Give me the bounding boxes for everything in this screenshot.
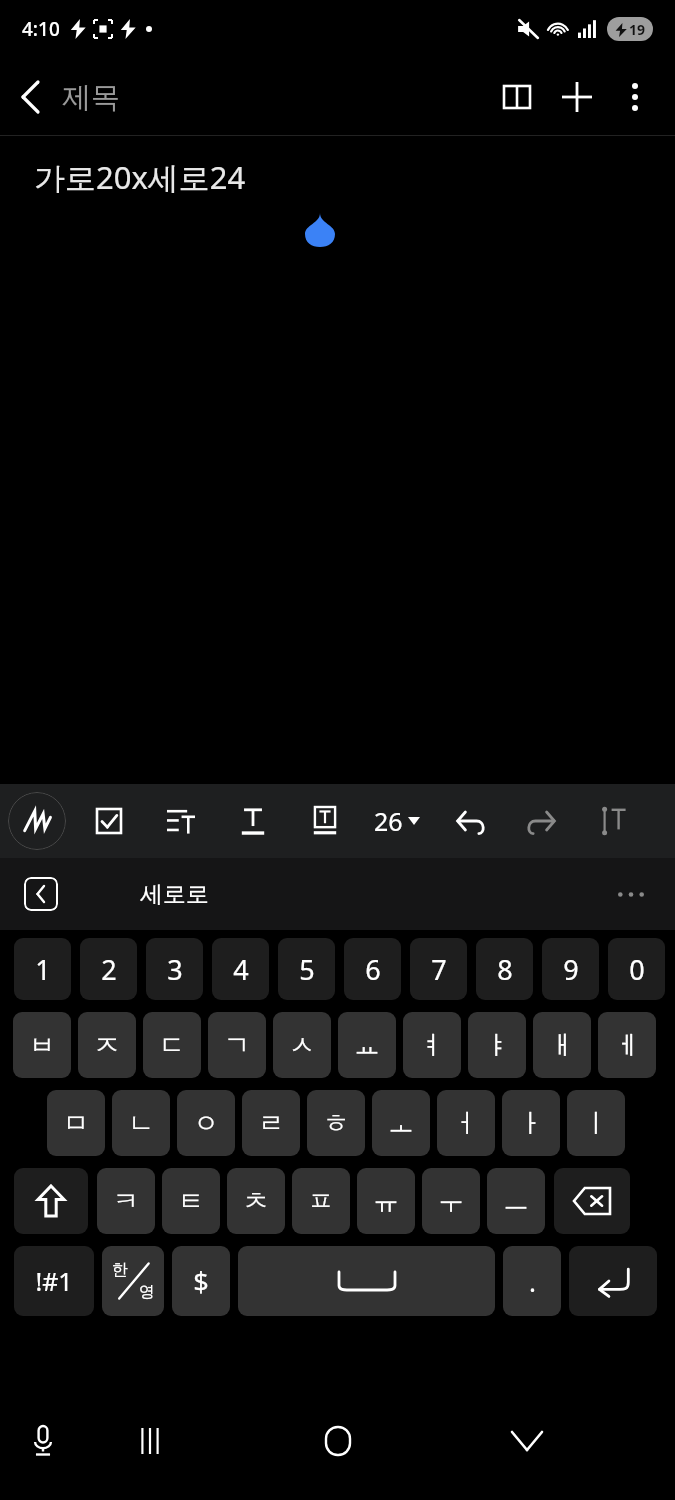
button[interactable]: 3 [146, 938, 203, 1000]
button[interactable]: ㅕ [403, 1012, 461, 1078]
button[interactable]: 6 [344, 938, 401, 1000]
staticText: 1 [35, 951, 51, 988]
button[interactable]: Shift [14, 1168, 88, 1234]
button[interactable]: ㅋ [97, 1168, 155, 1234]
button[interactable]: ㅣ [567, 1090, 625, 1156]
staticText: ㅏ [518, 1107, 544, 1140]
button[interactable]: 1 [14, 938, 71, 1000]
staticText: 0 [629, 951, 645, 988]
button[interactable]: More [611, 874, 651, 914]
staticText: ㄱ [224, 1029, 250, 1062]
button[interactable]: Handwriting [8, 792, 66, 850]
staticText: ㅋ [113, 1185, 139, 1218]
button[interactable]: Line spacing [588, 796, 638, 846]
button[interactable]: 4 [212, 938, 269, 1000]
staticText: ㅣ [583, 1107, 609, 1140]
button[interactable]: Paragraph style [156, 796, 206, 846]
button[interactable]: Hide keyboard [499, 1413, 555, 1469]
button[interactable]: ㅜ [422, 1168, 480, 1234]
button[interactable]: ㄷ [143, 1012, 201, 1078]
staticText: ㅛ [354, 1029, 380, 1062]
button[interactable]: 5 [278, 938, 335, 1000]
button[interactable]: Text style [228, 796, 278, 846]
staticText: ㅎ [323, 1107, 349, 1140]
button[interactable]: 0 [608, 938, 665, 1000]
button[interactable]: Recents [122, 1413, 178, 1469]
staticText: 세로로 [140, 880, 209, 909]
button[interactable]: Previous suggestions [24, 877, 58, 911]
button[interactable]: Redo [516, 796, 566, 846]
button[interactable]: ㅡ [487, 1168, 545, 1234]
button[interactable]: Space [238, 1246, 495, 1316]
button[interactable]: ㅎ [307, 1090, 365, 1156]
button[interactable]: ㅊ [227, 1168, 285, 1234]
button[interactable]: 7 [410, 938, 467, 1000]
staticText: 19 [629, 20, 646, 39]
button[interactable]: ㅠ [357, 1168, 415, 1234]
staticText: ㄷ [159, 1029, 185, 1062]
button[interactable]: Language [102, 1246, 164, 1316]
staticText: ㅂ [29, 1029, 55, 1062]
button[interactable]: ㅂ [13, 1012, 71, 1078]
button[interactable]: Undo [446, 796, 496, 846]
staticText: ㅈ [94, 1029, 120, 1062]
staticText: 4:10 [22, 16, 60, 42]
staticText: ㅕ [419, 1029, 445, 1062]
button[interactable]: ㅗ [372, 1090, 430, 1156]
button[interactable]: ㅏ [502, 1090, 560, 1156]
button[interactable]: Add [547, 67, 607, 127]
button[interactable]: Reading mode [487, 67, 547, 127]
staticText: 26 [374, 804, 403, 838]
button[interactable]: 9 [542, 938, 599, 1000]
button[interactable]: 26 [370, 804, 424, 838]
staticText: 제목 [62, 79, 120, 116]
staticText: 2 [101, 951, 117, 988]
button[interactable]: ㅁ [47, 1090, 105, 1156]
staticText: !#1 [35, 1264, 73, 1298]
staticText: 가로20x세로24 [34, 156, 246, 198]
button[interactable]: $ [172, 1246, 230, 1316]
button[interactable]: ㅓ [437, 1090, 495, 1156]
button[interactable]: 2 [80, 938, 137, 1000]
button[interactable]: Enter [569, 1246, 657, 1316]
staticText: 8 [497, 951, 513, 988]
staticText: ㅠ [373, 1185, 399, 1218]
button[interactable]: ㅔ [598, 1012, 656, 1078]
button[interactable]: Home [308, 1411, 368, 1471]
button[interactable]: More options [607, 69, 663, 125]
button[interactable]: ㅑ [468, 1012, 526, 1078]
button[interactable]: ㅇ [177, 1090, 235, 1156]
button[interactable]: ㅈ [78, 1012, 136, 1078]
staticText: 6 [365, 951, 381, 988]
staticText: ㅍ [308, 1185, 334, 1218]
staticText: ㄴ [128, 1107, 154, 1140]
button[interactable]: Text box [300, 796, 350, 846]
button[interactable]: ㅐ [533, 1012, 591, 1078]
staticText: ㅓ [453, 1107, 479, 1140]
staticText: $ [193, 1263, 209, 1300]
staticText: 7 [431, 951, 447, 988]
button[interactable]: ㅍ [292, 1168, 350, 1234]
button[interactable]: . [503, 1246, 561, 1316]
button[interactable]: ㄴ [112, 1090, 170, 1156]
button[interactable]: ㅛ [338, 1012, 396, 1078]
button[interactable]: Back [0, 66, 62, 128]
button[interactable]: !#1 [14, 1246, 94, 1316]
staticText: 한 [112, 1260, 128, 1280]
button[interactable]: ㅌ [162, 1168, 220, 1234]
staticText: ㅐ [549, 1029, 575, 1062]
button[interactable]: Backspace [554, 1168, 630, 1234]
button[interactable]: Checklist [84, 796, 134, 846]
button[interactable]: 세로로 [132, 872, 217, 917]
staticText: ㅅ [289, 1029, 315, 1062]
staticText: 4 [233, 951, 249, 988]
staticText: ㅊ [243, 1185, 269, 1218]
staticText: ㅜ [438, 1185, 464, 1218]
button[interactable]: ㄹ [242, 1090, 300, 1156]
button[interactable]: 8 [476, 938, 533, 1000]
button[interactable]: ㅅ [273, 1012, 331, 1078]
staticText: 9 [563, 951, 579, 988]
button[interactable]: ㄱ [208, 1012, 266, 1078]
button[interactable]: Voice input [16, 1414, 70, 1468]
staticText: ㅔ [614, 1029, 640, 1062]
